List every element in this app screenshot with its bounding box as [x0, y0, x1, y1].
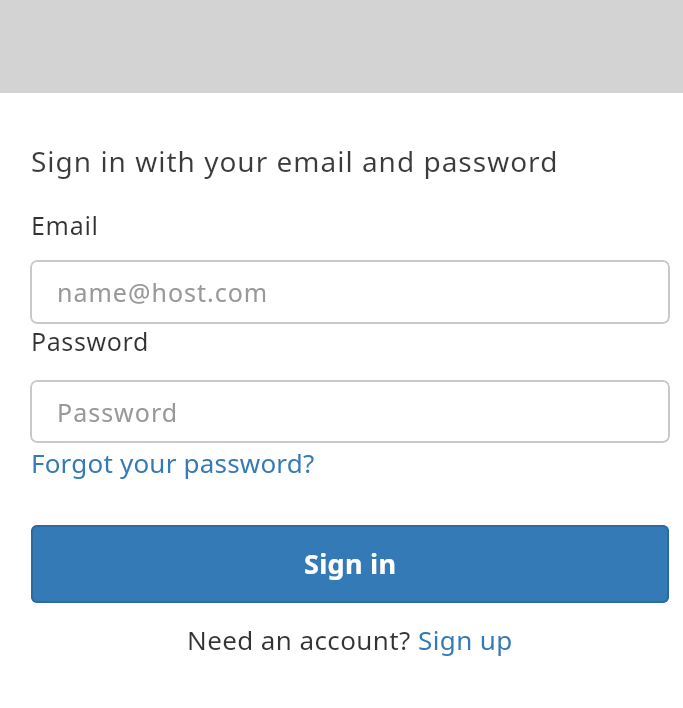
staticText: Need an account?	[187, 622, 411, 657]
button[interactable]: Forgot your password?	[31, 445, 315, 480]
button[interactable]: name@host.com	[30, 260, 670, 324]
staticText: Sign in with your email and password	[31, 142, 559, 180]
button[interactable]: Sign up	[418, 622, 513, 657]
button[interactable]: Password	[30, 380, 670, 443]
staticText: Sign in	[304, 545, 397, 582]
staticText: Password	[57, 395, 179, 429]
staticText: name@host.com	[57, 275, 269, 309]
staticText: Password	[31, 324, 149, 358]
button[interactable]: Sign in	[31, 525, 669, 603]
staticText: Email	[31, 208, 99, 242]
